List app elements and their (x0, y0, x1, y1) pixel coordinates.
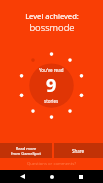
button[interactable]: Home (45, 170, 58, 183)
staticText: bossmode (29, 21, 75, 34)
button[interactable]: Back (16, 170, 29, 183)
staticText: Read more from GameSpot (11, 146, 41, 156)
staticText: 9 (46, 73, 57, 98)
button[interactable]: Recent apps (74, 170, 87, 183)
staticText: Level achieved: (25, 11, 79, 21)
staticText: stories (44, 98, 59, 104)
staticText: Share (72, 148, 85, 154)
staticText: Questions or comments? (27, 161, 77, 167)
button[interactable]: Read more from GameSpot (0, 143, 52, 158)
button[interactable]: Share (54, 143, 103, 158)
staticText: You've read (39, 67, 64, 73)
